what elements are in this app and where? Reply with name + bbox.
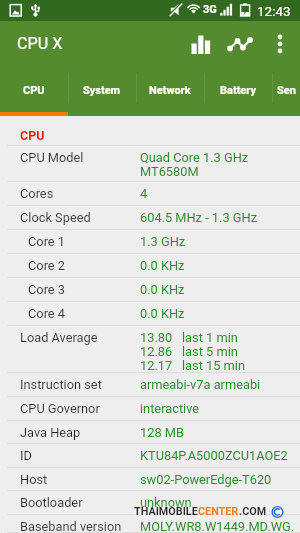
button[interactable]: Baseband version [0, 515, 300, 533]
staticText: 12:43 [257, 3, 291, 19]
button[interactable]: Java Heap [0, 421, 300, 444]
staticText: 0.0 KHz [140, 282, 185, 297]
button[interactable]: Instruction set [0, 373, 300, 397]
staticText: Load Average [20, 330, 140, 345]
staticText: 3G [203, 3, 217, 16]
staticText: KTU84P.A5000ZCU1AOE2 [140, 448, 288, 463]
staticText: Baseband version [20, 519, 140, 533]
button[interactable]: ID [0, 444, 300, 468]
button[interactable]: Core 1 [0, 230, 300, 254]
staticText: Core 1 [28, 234, 140, 249]
staticText: last 1 min last 5 min last 15 min [182, 330, 245, 373]
button[interactable]: Load Average [0, 326, 300, 373]
staticText: sw02-PowerEdge-T620 [140, 472, 272, 487]
staticText: unknown [140, 495, 192, 510]
button[interactable]: Bar chart [186, 25, 216, 59]
staticText: CENTER [198, 505, 239, 518]
staticText: Quad Core 1.3 GHz MT6580M [140, 150, 249, 179]
staticText: Cores [20, 186, 140, 201]
staticText: CPU Governor [20, 401, 140, 416]
staticText: Core 3 [28, 282, 140, 297]
button[interactable]: CPU [0, 70, 68, 116]
button[interactable]: Bootloader [0, 491, 300, 515]
button[interactable]: Sen [272, 70, 300, 116]
button[interactable]: More options [268, 25, 292, 59]
staticText: CPU [23, 84, 45, 97]
staticText: .COM [239, 505, 267, 518]
button[interactable]: Core 3 [0, 278, 300, 302]
button[interactable]: CPU Governor [0, 397, 300, 421]
staticText: 0.0 KHz [140, 306, 185, 321]
staticText: System [83, 84, 121, 97]
button[interactable]: Host [0, 468, 300, 491]
button[interactable]: Network [136, 70, 204, 116]
staticText: MOLY.WR8.W1449.MD.WG. [140, 519, 295, 533]
staticText: Core 2 [28, 258, 140, 273]
staticText: Host [20, 472, 140, 487]
staticText: 0.0 KHz [140, 258, 185, 273]
staticText: Sen [277, 84, 296, 97]
staticText: CPU Model [20, 150, 140, 165]
staticText: Battery [220, 84, 256, 97]
staticText: 128 MB [140, 425, 184, 440]
button[interactable]: System [68, 70, 136, 116]
button[interactable]: Clock Speed [0, 206, 300, 230]
staticText: Instruction set [20, 377, 140, 392]
staticText: ID [20, 448, 140, 463]
staticText: Clock Speed [20, 210, 140, 225]
staticText: Core 4 [28, 306, 140, 321]
staticText: CPU X [17, 34, 63, 53]
staticText: 4 [140, 186, 148, 201]
button[interactable]: Cores [0, 182, 300, 206]
staticText: 1.3 GHz [140, 234, 186, 249]
button[interactable]: CPU Model [0, 146, 300, 182]
staticText: 13.80 12.86 12.17 [140, 330, 182, 373]
staticText: 604.5 MHz - 1.3 GHz [140, 210, 257, 225]
button[interactable]: Core 4 [0, 302, 300, 326]
staticText: Java Heap [20, 425, 140, 440]
staticText: armeabi-v7a armeabi [140, 377, 261, 392]
staticText: interactive [140, 401, 200, 416]
staticText: Bootloader [20, 495, 140, 510]
staticText: CPU [20, 128, 45, 143]
button[interactable]: Show chart [222, 25, 254, 59]
staticText: THAIMOBILE [134, 505, 198, 518]
staticText: Network [149, 84, 191, 97]
button[interactable]: Core 2 [0, 254, 300, 278]
button[interactable]: Battery [204, 70, 272, 116]
